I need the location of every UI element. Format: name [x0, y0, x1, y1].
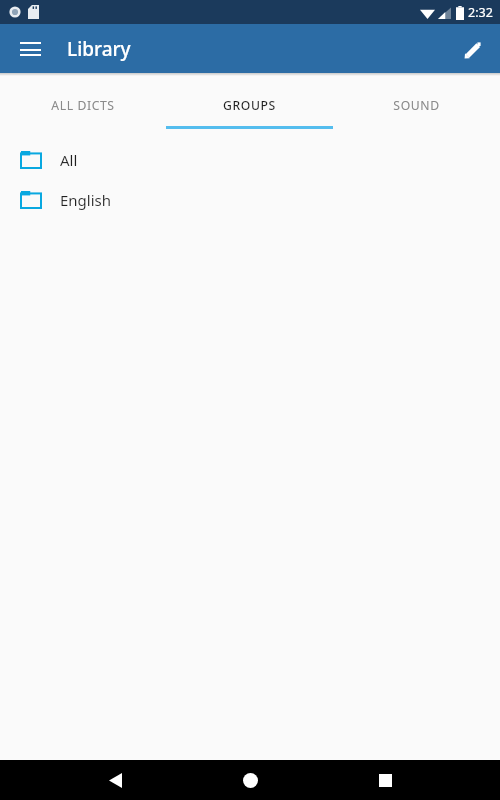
button[interactable]: Edit [450, 26, 496, 72]
staticText: SOUND [393, 97, 440, 114]
staticText: All [60, 150, 78, 170]
button[interactable]: All [0, 140, 500, 180]
button[interactable]: GROUPS [166, 76, 333, 131]
staticText: GROUPS [223, 97, 276, 114]
button[interactable]: Open navigation drawer [6, 25, 54, 73]
button[interactable]: Home [230, 760, 270, 800]
button[interactable]: SOUND [333, 76, 500, 131]
button[interactable]: ALL DICTS [0, 76, 166, 131]
staticText: ALL DICTS [51, 97, 115, 114]
button[interactable]: Recent apps [365, 760, 405, 800]
staticText: 2:32 [468, 4, 493, 21]
staticText: Library [67, 36, 131, 62]
button[interactable]: Back [95, 760, 135, 800]
staticText: English [60, 190, 112, 210]
button[interactable]: English [0, 180, 500, 220]
